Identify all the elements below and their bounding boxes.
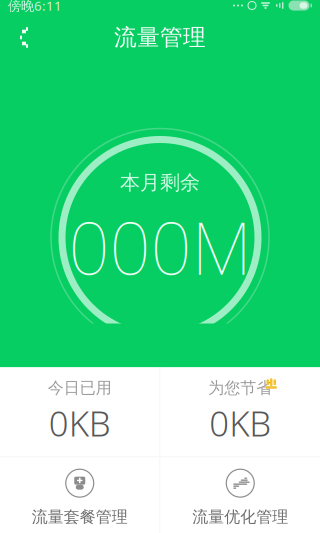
- staticText: 0KB: [209, 400, 271, 446]
- button[interactable]: 为您节省: [160, 367, 320, 456]
- staticText: 傍晚6:11: [8, 0, 62, 14]
- button[interactable]: 流量套餐管理: [0, 457, 159, 533]
- staticText: 流量管理: [114, 24, 206, 51]
- staticText: 0KB: [49, 400, 111, 446]
- staticText: 本月剩余: [120, 170, 200, 195]
- staticText: 流量优化管理: [192, 507, 288, 527]
- staticText: 流量套餐管理: [32, 507, 128, 527]
- button[interactable]: 今日已用: [0, 367, 159, 456]
- button[interactable]: 流量优化管理: [160, 457, 320, 533]
- staticText: 000M: [68, 199, 251, 295]
- staticText: 为您节省: [208, 378, 272, 398]
- button[interactable]: 返回: [0, 15, 48, 59]
- staticText: 今日已用: [48, 378, 112, 398]
